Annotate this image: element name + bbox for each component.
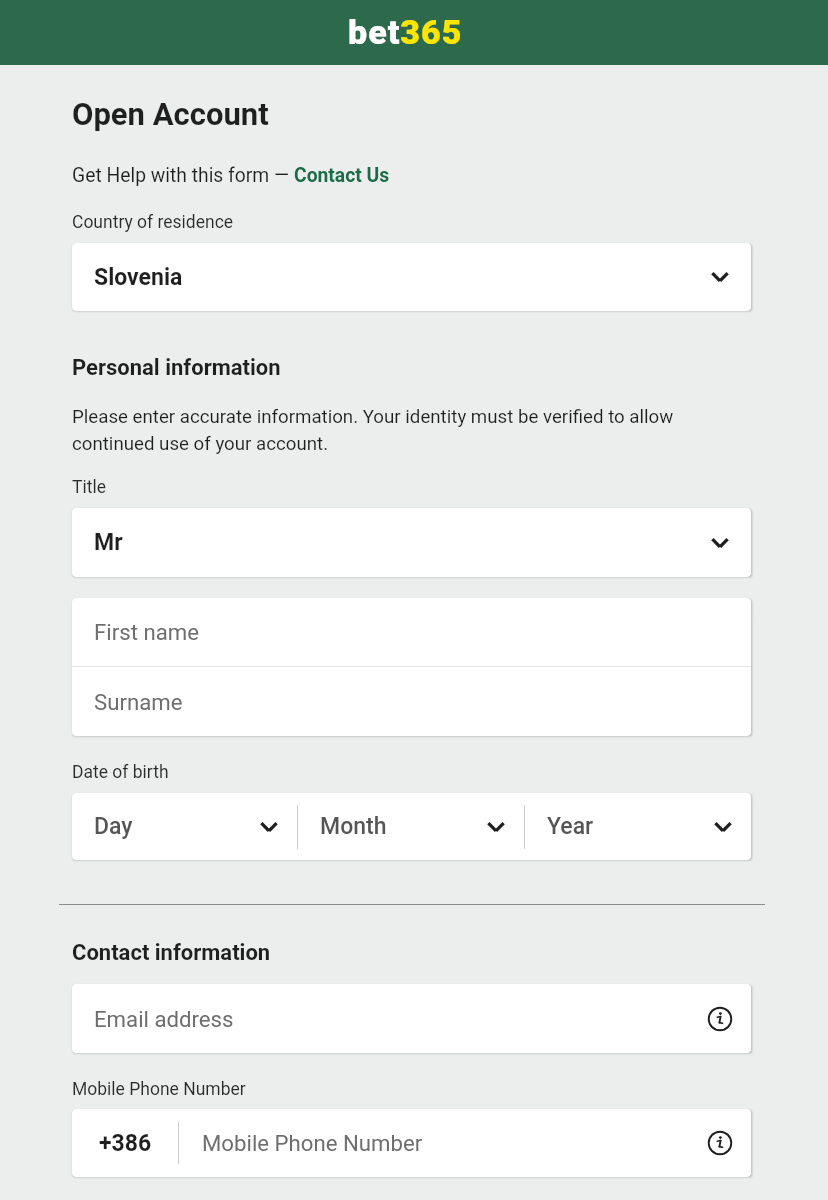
staticText: Contact information: [72, 940, 271, 966]
button[interactable]: Email address information: [707, 1006, 733, 1032]
staticText: Email address: [94, 1006, 234, 1032]
staticText: bet365: [348, 12, 463, 52]
staticText: Contact Us: [294, 164, 390, 187]
button[interactable]: Month: [298, 793, 524, 860]
staticText: Mobile Phone Number: [72, 1079, 246, 1100]
button[interactable]: Day: [72, 793, 297, 860]
staticText: Country of residence: [72, 212, 234, 233]
button[interactable]: First name: [72, 598, 751, 666]
button[interactable]: Mobile Phone Number: [179, 1109, 751, 1177]
staticText: Open Account: [72, 96, 269, 132]
button[interactable]: Mobile phone number information: [707, 1130, 733, 1156]
staticText: Title: [72, 477, 106, 498]
button[interactable]: Surname: [72, 667, 751, 736]
staticText: +386: [99, 1130, 152, 1157]
staticText: Mr: [94, 529, 123, 556]
staticText: Get Help with this form —: [72, 164, 294, 187]
staticText: First name: [94, 619, 199, 645]
staticText: Day: [94, 813, 133, 840]
button[interactable]: Contact Us: [294, 164, 390, 187]
staticText: Mobile Phone Number: [202, 1130, 423, 1156]
staticText: Date of birth: [72, 762, 169, 783]
staticText: Month: [320, 813, 387, 840]
staticText: Personal information: [72, 355, 281, 381]
button[interactable]: Year: [525, 793, 751, 860]
button[interactable]: Email address: [72, 984, 751, 1053]
button[interactable]: Mr: [72, 508, 751, 577]
staticText: Year: [547, 813, 594, 840]
button[interactable]: +386: [72, 1109, 178, 1177]
button[interactable]: Slovenia: [72, 243, 751, 311]
staticText: Please enter accurate information. Your …: [72, 406, 751, 455]
staticText: Slovenia: [94, 264, 183, 291]
staticText: Surname: [94, 689, 183, 715]
